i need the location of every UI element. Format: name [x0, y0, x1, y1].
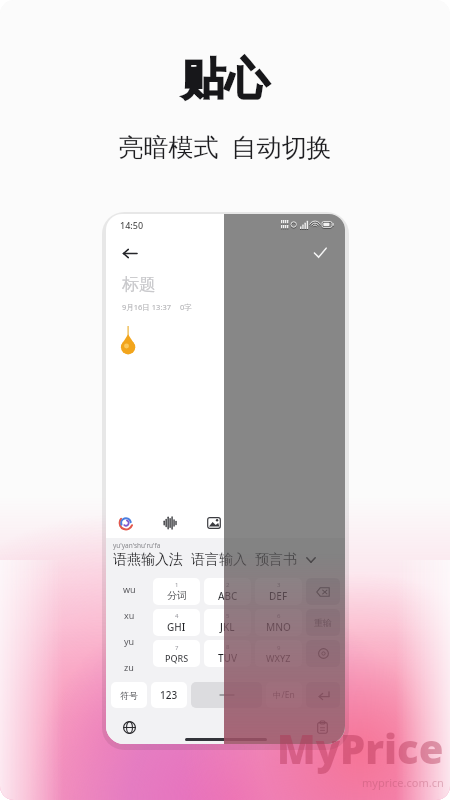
- staticText: xu: [124, 609, 135, 621]
- button[interactable]: Back: [116, 240, 142, 266]
- button[interactable]: 2: [204, 578, 251, 605]
- button[interactable]: Backspace: [306, 578, 340, 605]
- staticText: GHI: [167, 620, 186, 634]
- staticText: WXYZ: [266, 652, 291, 664]
- staticText: 1: [175, 581, 179, 589]
- staticText: 中/En: [273, 689, 295, 701]
- staticText: 贴心: [181, 52, 269, 107]
- staticText: 5: [226, 612, 230, 620]
- staticText: myprice.com.cn: [362, 775, 444, 790]
- staticText: 2: [226, 581, 230, 589]
- button[interactable]: xu: [109, 602, 149, 628]
- button[interactable]: zu: [109, 654, 149, 680]
- button[interactable]: Switch language: [118, 716, 140, 738]
- staticText: zu: [124, 661, 134, 673]
- staticText: ABC: [218, 589, 238, 603]
- staticText: 6: [277, 612, 281, 620]
- staticText: 14:50: [120, 219, 144, 231]
- staticText: PQRS: [165, 652, 189, 664]
- staticText: yu: [124, 635, 135, 647]
- button[interactable]: 3: [255, 578, 302, 605]
- button[interactable]: 7: [153, 640, 200, 667]
- button[interactable]: 4: [153, 609, 200, 636]
- button[interactable]: 8: [204, 640, 251, 667]
- staticText: JKL: [220, 620, 235, 634]
- button[interactable]: Done: [307, 240, 333, 266]
- staticText: 3: [277, 581, 281, 589]
- button[interactable]: Voice input: [160, 513, 180, 533]
- button[interactable]: Space: [191, 682, 262, 708]
- staticText: 符号: [120, 690, 138, 701]
- button[interactable]: More candidates: [303, 552, 319, 568]
- button[interactable]: Enter: [306, 682, 340, 708]
- button[interactable]: 语燕输入法: [113, 551, 183, 569]
- button[interactable]: 语言输入: [191, 551, 247, 569]
- button[interactable]: 符号: [111, 682, 147, 708]
- button[interactable]: wu: [109, 576, 149, 602]
- button[interactable]: 9: [255, 640, 302, 667]
- staticText: 分词: [167, 589, 187, 602]
- staticText: 0字: [180, 302, 192, 312]
- staticText: 4: [175, 612, 179, 620]
- staticText: 9: [277, 644, 281, 652]
- button[interactable]: AI assistant: [116, 513, 136, 533]
- button[interactable]: 6: [255, 609, 302, 636]
- button[interactable]: 1: [153, 578, 200, 605]
- button[interactable]: 123: [151, 682, 187, 708]
- staticText: 重输: [314, 617, 332, 628]
- button[interactable]: Resend: [306, 609, 340, 636]
- button[interactable]: Insert image: [204, 513, 224, 533]
- staticText: 9月16日 13:37: [122, 302, 171, 312]
- button[interactable]: At sign: [306, 640, 340, 667]
- staticText: 标题: [122, 274, 156, 295]
- button[interactable]: 5: [204, 609, 251, 636]
- button[interactable]: yu: [109, 628, 149, 654]
- staticText: 亮暗模式 自动切换: [118, 129, 332, 163]
- staticText: DEF: [269, 589, 288, 603]
- staticText: TUV: [218, 651, 238, 665]
- button[interactable]: Clipboard: [311, 716, 333, 738]
- staticText: 7: [175, 644, 179, 652]
- staticText: yu'yan'shu'ru'fa: [113, 541, 161, 550]
- staticText: 8: [226, 643, 230, 651]
- staticText: wu: [123, 583, 136, 595]
- button[interactable]: 中/En: [266, 682, 302, 708]
- staticText: MyPrice: [277, 721, 444, 775]
- staticText: MNO: [266, 620, 291, 634]
- button[interactable]: 预言书: [255, 551, 297, 569]
- staticText: 123: [160, 688, 178, 702]
